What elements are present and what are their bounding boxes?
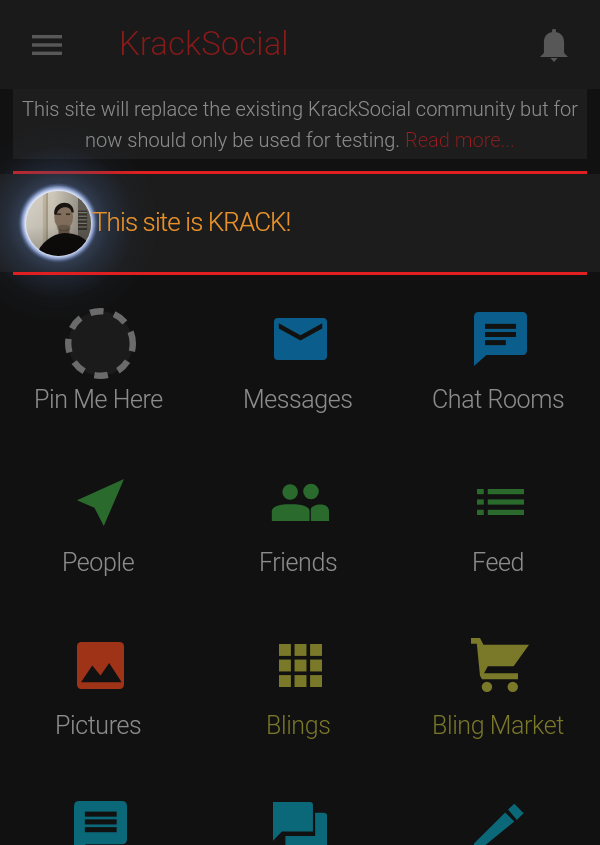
- button[interactable]: Blings: [200, 601, 400, 764]
- staticText: People: [62, 548, 135, 577]
- button[interactable]: Pin Me Here: [0, 275, 200, 438]
- button[interactable]: Friends: [200, 438, 400, 601]
- button[interactable]: edit: [400, 764, 600, 845]
- button[interactable]: Messages: [200, 275, 400, 438]
- staticText: Messages: [243, 385, 353, 414]
- button[interactable]: Open navigation menu: [16, 14, 78, 76]
- button[interactable]: chats: [200, 764, 400, 845]
- staticText: Feed: [472, 548, 524, 577]
- staticText: Pictures: [55, 711, 142, 740]
- button[interactable]: This site will replace the existing Krac…: [13, 89, 587, 159]
- staticText: This site is KRACK!: [92, 207, 291, 237]
- staticText: Pin Me Here: [34, 385, 163, 414]
- button[interactable]: forum: [0, 764, 200, 845]
- staticText: Bling Market: [432, 711, 564, 740]
- button[interactable]: This site is KRACK!: [0, 174, 600, 272]
- button[interactable]: Pictures: [0, 601, 200, 764]
- button[interactable]: Bling Market: [400, 601, 600, 764]
- staticText: KrackSocial: [119, 24, 289, 63]
- button[interactable]: Chat Rooms: [400, 275, 600, 438]
- button[interactable]: People: [0, 438, 200, 601]
- button[interactable]: Notifications: [526, 17, 582, 73]
- button[interactable]: Feed: [400, 438, 600, 601]
- staticText: This site will replace the existing Krac…: [18, 97, 582, 152]
- staticText: Blings: [266, 711, 331, 740]
- staticText: Chat Rooms: [432, 385, 565, 414]
- staticText: Friends: [259, 548, 338, 577]
